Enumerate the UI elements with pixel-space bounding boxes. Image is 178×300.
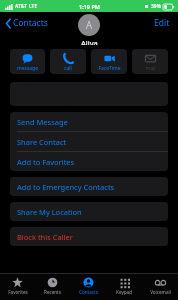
button[interactable]: Contacts <box>4 15 50 31</box>
button[interactable]: Keypad <box>106 274 142 300</box>
staticText: AT&T <box>15 3 27 10</box>
staticText: Voicemail <box>150 289 171 295</box>
button[interactable]: Add to Favorites <box>10 152 168 171</box>
button[interactable]: Add to Emergency Contacts <box>10 177 168 196</box>
staticText: LTE <box>29 3 38 10</box>
button[interactable]: Edit <box>151 15 173 31</box>
button[interactable]: Block this Caller <box>10 227 168 246</box>
staticText: Favorites <box>8 289 28 295</box>
staticText: Recents <box>44 289 61 295</box>
staticText: Add to Emergency Contacts <box>17 182 115 192</box>
button[interactable]: mail <box>132 49 168 74</box>
button[interactable]: Favorites <box>0 274 35 300</box>
staticText: Edit <box>154 17 170 29</box>
staticText: Share Contact <box>17 137 67 147</box>
button[interactable]: A <box>78 14 100 36</box>
button[interactable]: FaceTime <box>91 49 127 74</box>
staticText: Keypad <box>116 289 132 295</box>
staticText: Block this Caller <box>17 232 73 242</box>
button[interactable]: Contacts <box>70 274 106 300</box>
button[interactable]: Share My Location <box>10 202 168 221</box>
staticText: 39% <box>151 3 161 10</box>
button[interactable]: Recents <box>35 274 70 300</box>
button[interactable]: Voicemail <box>142 274 178 300</box>
staticText: message <box>17 65 38 72</box>
staticText: Share My Location <box>17 207 82 217</box>
staticText: Add to Favorites <box>17 157 75 167</box>
button[interactable]: Send Message <box>10 112 168 131</box>
staticText: Contacts <box>13 17 48 29</box>
button[interactable]: message <box>10 49 45 74</box>
staticText: FaceTime <box>98 65 121 72</box>
staticText: Send Message <box>17 117 68 127</box>
staticText: A <box>86 18 93 32</box>
staticText: mail <box>145 65 156 72</box>
button[interactable]: Share Contact <box>10 132 168 151</box>
staticText: Contacts <box>79 289 98 295</box>
staticText: 1:19 PM <box>79 3 100 10</box>
button[interactable]: call <box>50 49 86 74</box>
staticText: Aliya <box>81 38 98 45</box>
staticText: call <box>64 65 72 72</box>
